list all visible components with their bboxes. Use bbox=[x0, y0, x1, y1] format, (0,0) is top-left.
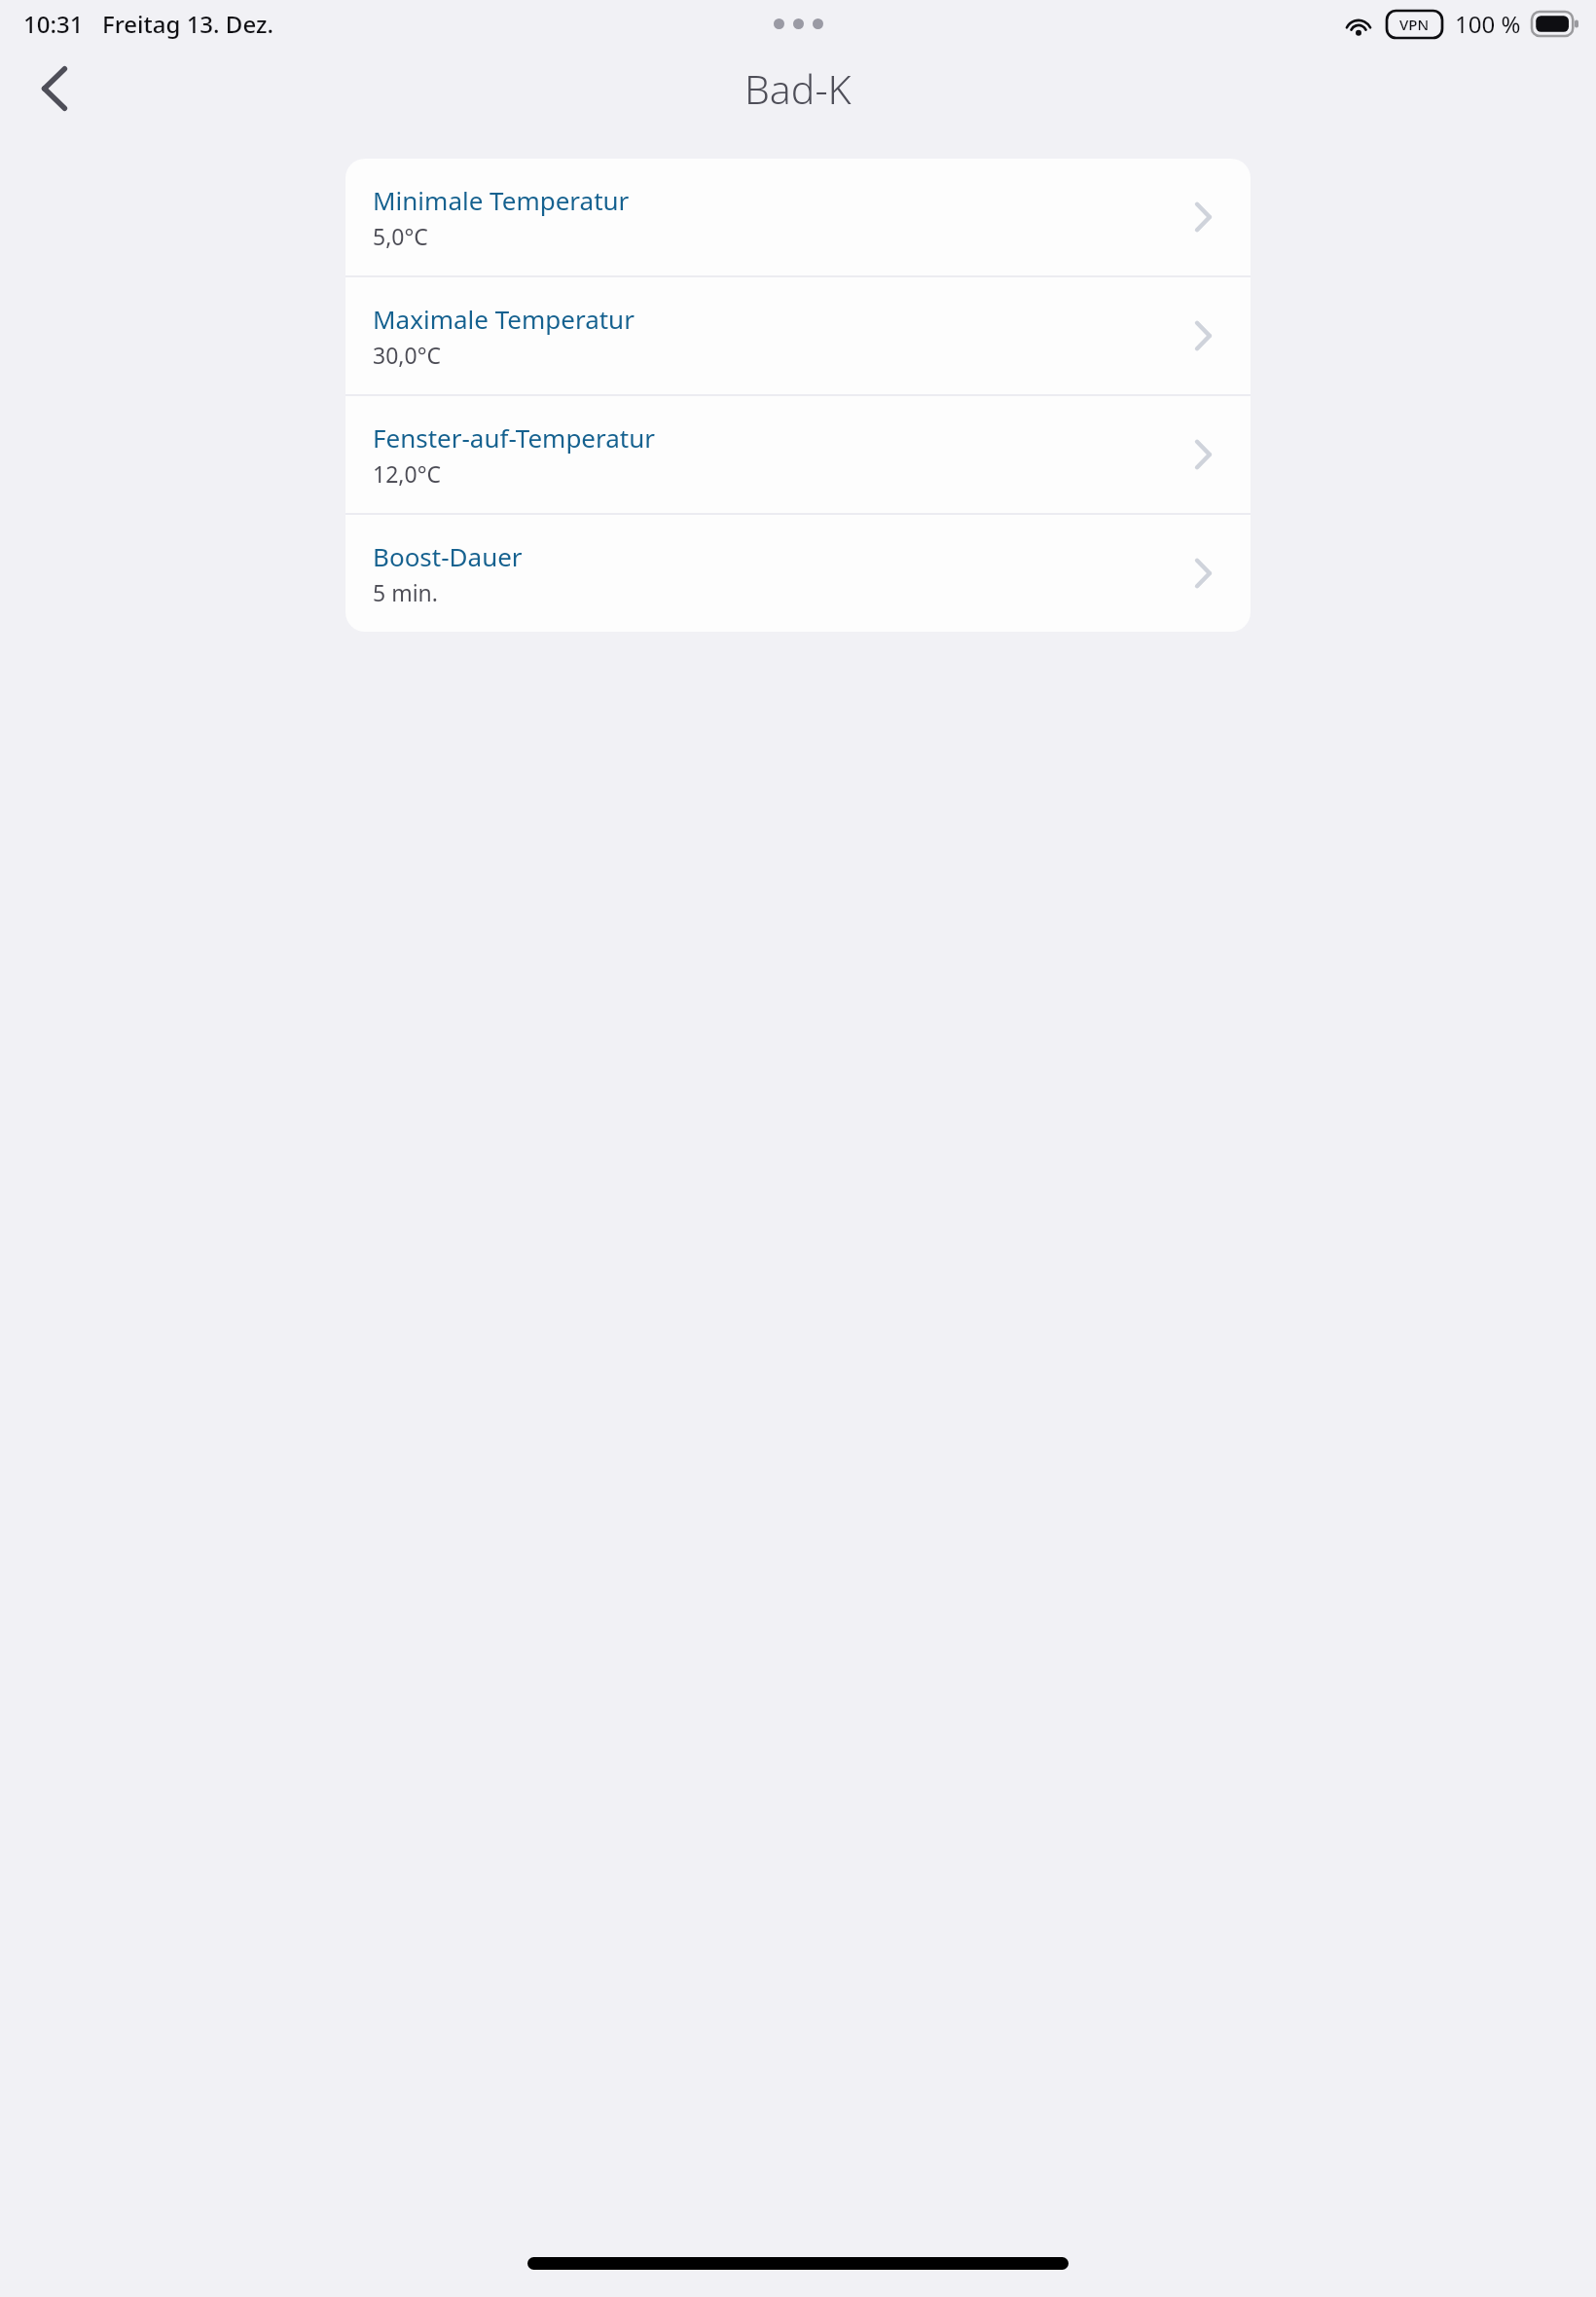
button[interactable]: Maximale Temperatur bbox=[345, 277, 1251, 394]
staticText: Maximale Temperatur bbox=[373, 302, 635, 336]
button[interactable]: Minimale Temperatur bbox=[345, 159, 1251, 275]
staticText: Bad-K bbox=[744, 61, 852, 116]
button[interactable]: Boost-Dauer bbox=[345, 515, 1251, 632]
staticText: Boost-Dauer bbox=[373, 539, 523, 573]
staticText: 100 % bbox=[1455, 8, 1521, 40]
staticText: 10:31 bbox=[23, 8, 84, 40]
staticText: Freitag 13. Dez. bbox=[102, 8, 273, 40]
staticText: 5,0°C bbox=[373, 221, 428, 251]
staticText: Minimale Temperatur bbox=[373, 183, 630, 217]
staticText: Fenster-auf-Temperatur bbox=[373, 420, 656, 455]
button[interactable]: Fenster-auf-Temperatur bbox=[345, 396, 1251, 513]
staticText: VPN bbox=[1399, 15, 1430, 34]
staticText: 12,0°C bbox=[373, 458, 442, 489]
staticText: 30,0°C bbox=[373, 340, 442, 370]
staticText: 5 min. bbox=[373, 577, 438, 607]
button[interactable]: Back bbox=[14, 48, 95, 129]
